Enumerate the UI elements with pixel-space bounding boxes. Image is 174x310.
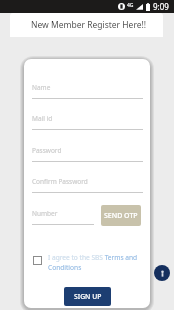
staticText: Confirm Password bbox=[32, 177, 88, 186]
button[interactable]: Confirm Password bbox=[32, 175, 143, 193]
button[interactable]: Mail id bbox=[32, 112, 143, 130]
staticText: I agree to the SBS Terms and Conditions bbox=[48, 253, 147, 272]
staticText: SEND OTP bbox=[104, 211, 138, 221]
staticText: 9:09 bbox=[153, 1, 169, 12]
button[interactable]: SIGN UP bbox=[64, 287, 111, 306]
staticText: Mail id bbox=[32, 114, 53, 123]
staticText: Name bbox=[32, 83, 51, 92]
staticText: New Member Register Here!! bbox=[31, 19, 147, 31]
staticText: Password bbox=[32, 146, 62, 155]
button[interactable]: Number bbox=[32, 207, 94, 225]
staticText: Number bbox=[32, 209, 58, 218]
button[interactable]: Name bbox=[32, 81, 143, 99]
button[interactable]: I agree to the SBS Terms and Conditions bbox=[33, 253, 147, 272]
button[interactable]: SEND OTP bbox=[101, 205, 141, 226]
staticText: SIGN UP bbox=[74, 292, 102, 301]
button[interactable]: Profile bbox=[154, 265, 170, 281]
staticText: 4G bbox=[127, 2, 134, 9]
button[interactable]: Password bbox=[32, 144, 143, 162]
